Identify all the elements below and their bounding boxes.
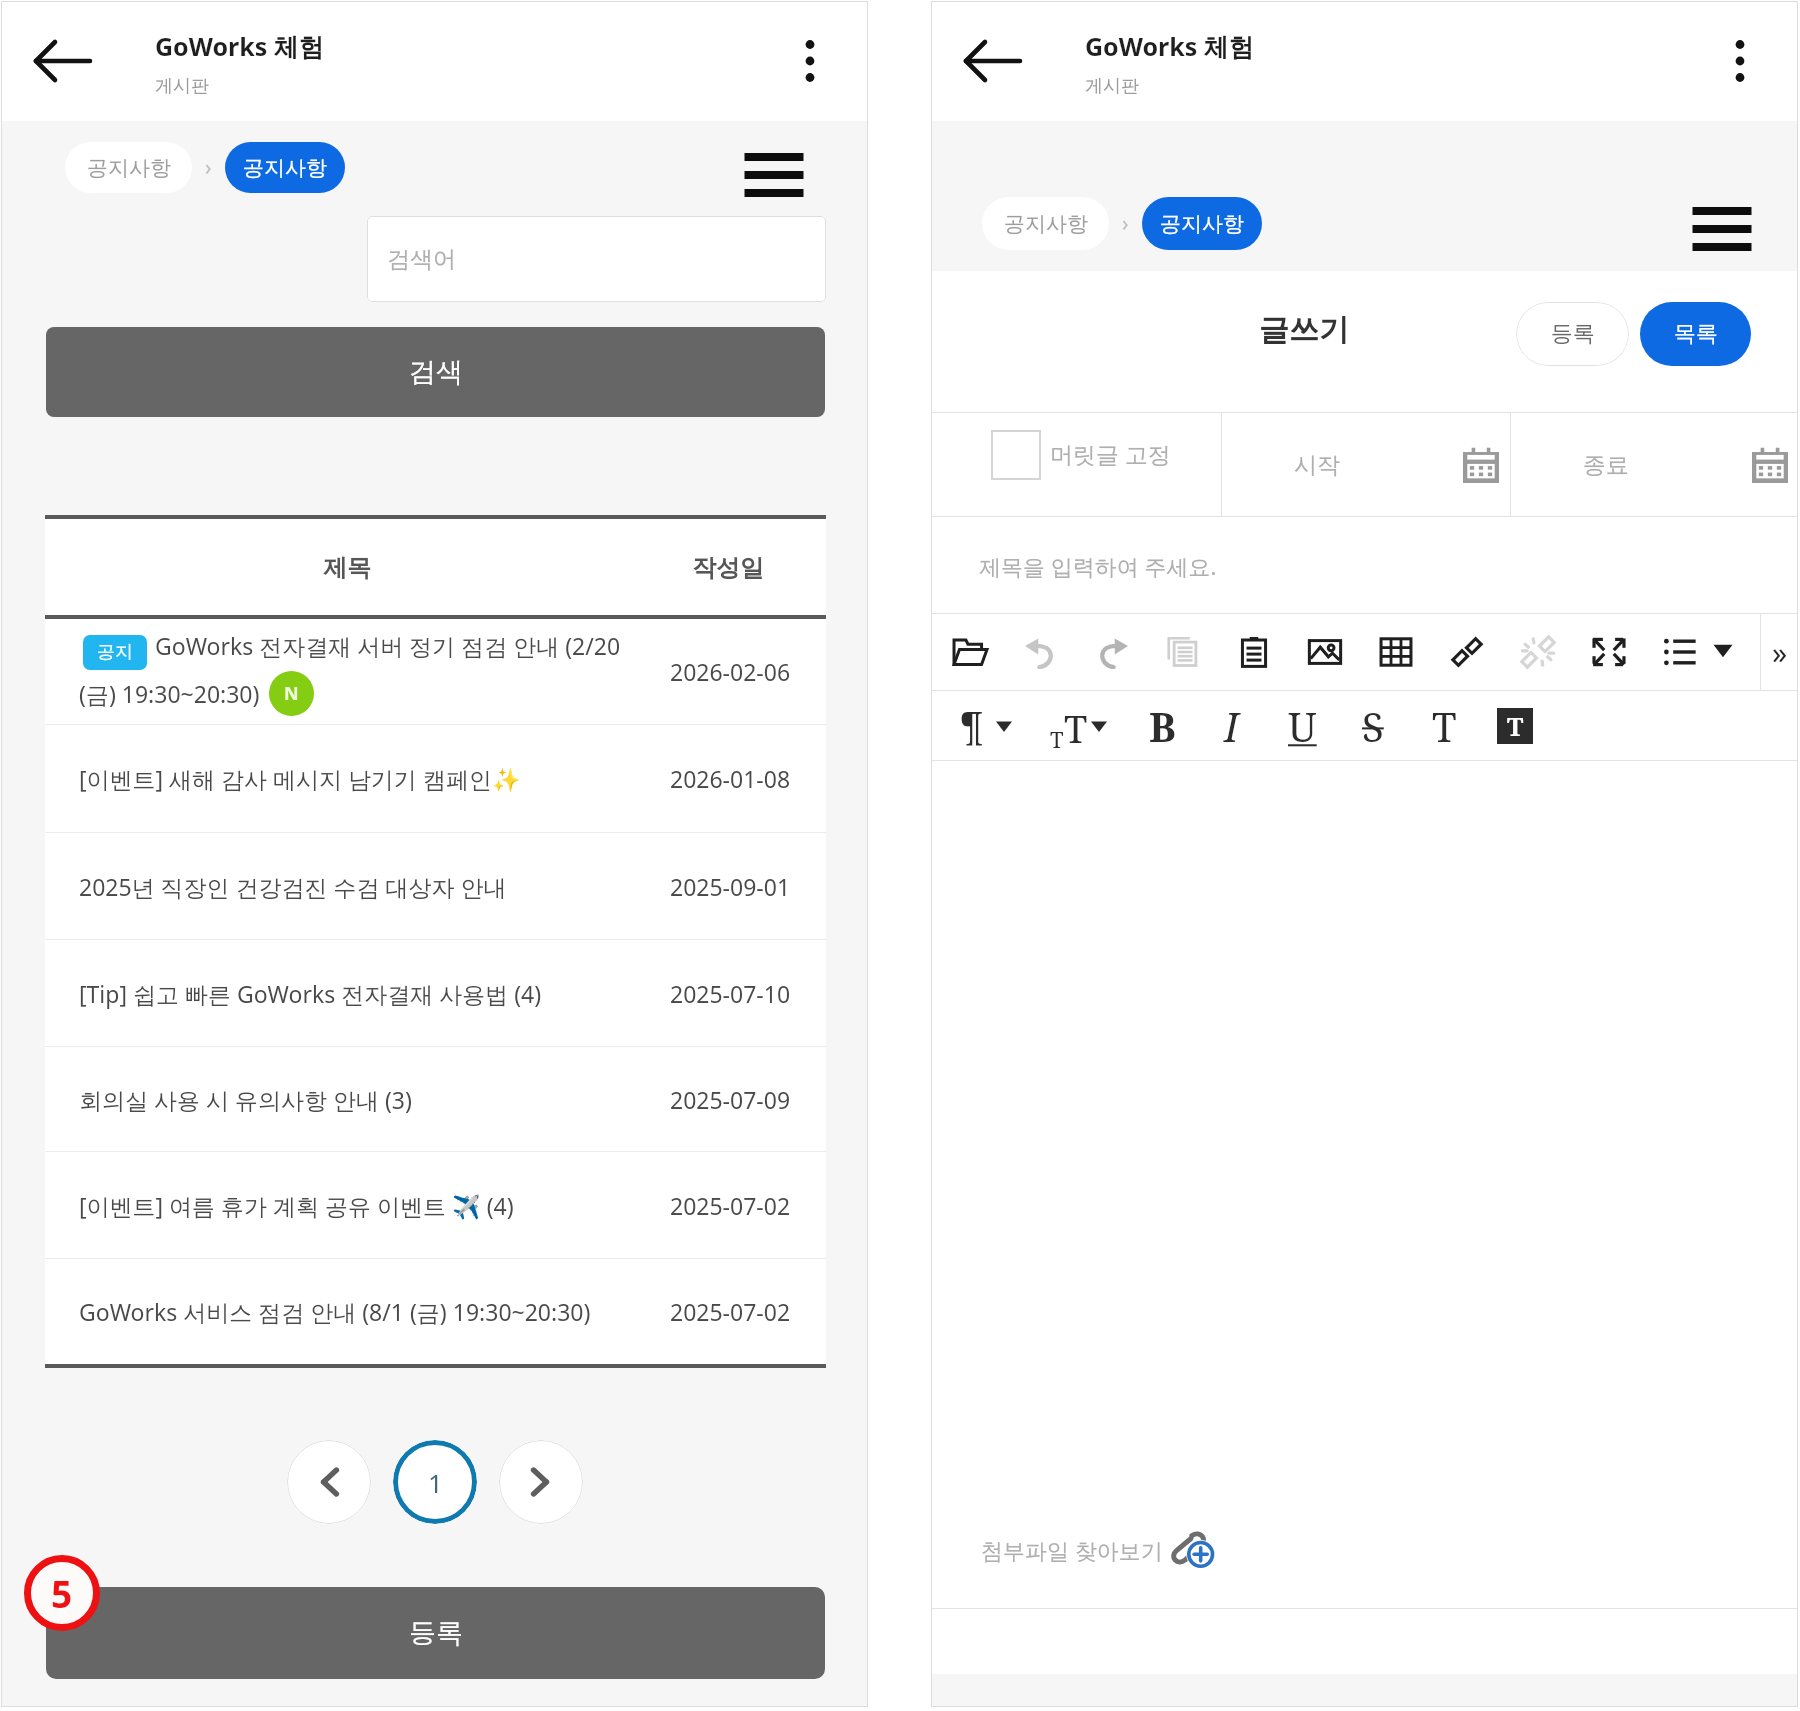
staticText: 공지사항 <box>243 155 327 181</box>
button[interactable]: 검색어 <box>367 216 826 302</box>
staticText: 첨부파일 찾아보기 <box>981 1535 1163 1565</box>
button[interactable]: 첨부파일 찾아보기 <box>931 1462 1798 1608</box>
button[interactable]: 2025년 직장인 건강검진 수검 대상자 안내 <box>45 833 826 939</box>
button[interactable]: Back <box>27 25 99 97</box>
staticText: 게시판 <box>155 75 209 98</box>
staticText: 종료 <box>1583 451 1629 480</box>
button[interactable]: Menu <box>743 149 805 201</box>
staticText: [이벤트] 새해 감사 메시지 남기기 캠페인✨ <box>79 763 521 794</box>
staticText: T <box>1064 702 1088 754</box>
staticText: [이벤트] 여름 휴가 계획 공유 이벤트 ✈️ (4) <box>79 1190 514 1221</box>
button[interactable]: Paste <box>1218 616 1289 688</box>
button[interactable]: Insert table <box>1360 616 1431 688</box>
button[interactable]: More options <box>782 33 838 89</box>
staticText: 제목 <box>323 553 371 583</box>
button[interactable]: [Tip] 쉽고 빠른 GoWorks 전자결재 사용법 (4) <box>45 940 826 1046</box>
staticText: 공지사항 <box>1004 211 1088 237</box>
staticText: 머릿글 고정 <box>1050 438 1171 469</box>
button[interactable]: Copy <box>1147 616 1218 688</box>
staticText: 2026-01-08 <box>670 763 791 794</box>
staticText: 검색 <box>409 355 463 389</box>
staticText: 검색어 <box>387 245 456 274</box>
staticText: 2025-07-09 <box>670 1084 791 1115</box>
staticText: 등록 <box>1551 320 1595 348</box>
button[interactable]: 공지사항 <box>1142 197 1262 250</box>
staticText: 회의실 사용 시 유의사항 안내 (3) <box>79 1084 412 1115</box>
staticText: ¶ <box>960 700 984 752</box>
button[interactable]: Remove link <box>1502 616 1573 688</box>
button[interactable]: Pick date <box>1752 447 1788 483</box>
staticText: N <box>284 681 299 706</box>
button[interactable]: Redo <box>1076 616 1147 688</box>
button[interactable]: 공지 <box>45 619 826 724</box>
staticText: S <box>1362 699 1384 753</box>
button[interactable]: Insert link <box>1431 616 1502 688</box>
button[interactable]: 머릿글 고정 <box>931 413 1221 516</box>
button[interactable]: Paragraph style <box>949 691 1035 760</box>
staticText: B <box>1149 699 1176 753</box>
button[interactable]: 공지사항 <box>225 142 345 193</box>
staticText: 등록 <box>409 1616 463 1650</box>
staticText: 작성일 <box>692 553 764 583</box>
staticText: 글쓰기 <box>1259 311 1349 349</box>
button[interactable]: Font size <box>1035 691 1127 760</box>
button[interactable]: Underline <box>1266 691 1338 760</box>
button[interactable]: 검색 <box>46 327 825 417</box>
staticText: 2026-02-06 <box>670 656 791 687</box>
button[interactable]: 목록 <box>1640 302 1751 366</box>
button[interactable]: GoWorks 서비스 점검 안내 (8/1 (금) 19:30~20:30) <box>45 1259 826 1364</box>
button[interactable]: Previous page <box>287 1440 371 1524</box>
staticText: T <box>1507 709 1524 743</box>
staticText: › <box>205 153 212 182</box>
button[interactable]: [이벤트] 새해 감사 메시지 남기기 캠페인✨ <box>45 725 826 832</box>
button[interactable]: Undo <box>1005 616 1076 688</box>
button[interactable]: More tools <box>1762 614 1798 690</box>
staticText: U <box>1288 699 1317 753</box>
button[interactable]: Insert image <box>1289 616 1360 688</box>
staticText: GoWorks 전자결재 서버 정기 점검 안내 (2/20 <box>155 630 621 661</box>
button[interactable]: 회의실 사용 시 유의사항 안내 (3) <box>45 1047 826 1151</box>
button[interactable]: List options <box>1702 614 1744 686</box>
staticText: 2025-07-02 <box>670 1190 791 1221</box>
staticText: 2025-09-01 <box>670 871 791 902</box>
staticText: 제목을 입력하여 주세요. <box>979 551 1217 581</box>
button[interactable]: List <box>1644 616 1715 688</box>
staticText: 1 <box>428 1465 443 1500</box>
staticText: GoWorks 체험 <box>1085 29 1254 63</box>
staticText: » <box>1772 632 1788 673</box>
staticText: I <box>1224 699 1239 753</box>
button[interactable]: 공지사항 <box>65 142 192 193</box>
button[interactable]: 등록 <box>46 1587 825 1679</box>
staticText: 5 <box>51 1568 73 1618</box>
staticText: 게시판 <box>1085 75 1139 98</box>
button[interactable]: Italic <box>1195 691 1267 760</box>
staticText: 시작 <box>1294 451 1340 480</box>
button[interactable]: [이벤트] 여름 휴가 계획 공유 이벤트 ✈️ (4) <box>45 1152 826 1258</box>
button[interactable]: Back <box>957 25 1029 97</box>
staticText: 2025-07-02 <box>670 1296 791 1327</box>
button[interactable]: Next page <box>499 1440 583 1524</box>
button[interactable]: Menu <box>1691 203 1753 255</box>
button[interactable]: Highlight colour <box>1479 691 1551 760</box>
staticText: 공지 <box>97 641 133 664</box>
button[interactable]: More options <box>1712 33 1768 89</box>
staticText: 2025-07-10 <box>670 978 791 1009</box>
button[interactable]: 등록 <box>1516 302 1629 366</box>
staticText: GoWorks 서비스 점검 안내 (8/1 (금) 19:30~20:30) <box>79 1296 591 1327</box>
staticText: 공지사항 <box>1160 211 1244 237</box>
button[interactable]: 제목을 입력하여 주세요. <box>931 517 1798 613</box>
button[interactable]: Strikethrough <box>1337 691 1409 760</box>
button[interactable]: Bold <box>1126 691 1198 760</box>
button[interactable]: 공지사항 <box>982 197 1109 250</box>
button[interactable]: Text colour <box>1408 691 1480 760</box>
button[interactable]: 시작 <box>1222 413 1510 516</box>
button[interactable]: Fullscreen <box>1573 616 1644 688</box>
staticText: (금) 19:30~20:30) <box>79 678 260 709</box>
staticText: GoWorks 체험 <box>155 29 324 63</box>
button[interactable]: 종료 <box>1511 413 1800 516</box>
staticText: 목록 <box>1674 320 1718 348</box>
button[interactable]: Pick date <box>1463 447 1499 483</box>
staticText: 공지사항 <box>87 155 171 181</box>
button[interactable]: Open file <box>934 616 1005 688</box>
button[interactable]: 1 <box>393 1440 477 1524</box>
